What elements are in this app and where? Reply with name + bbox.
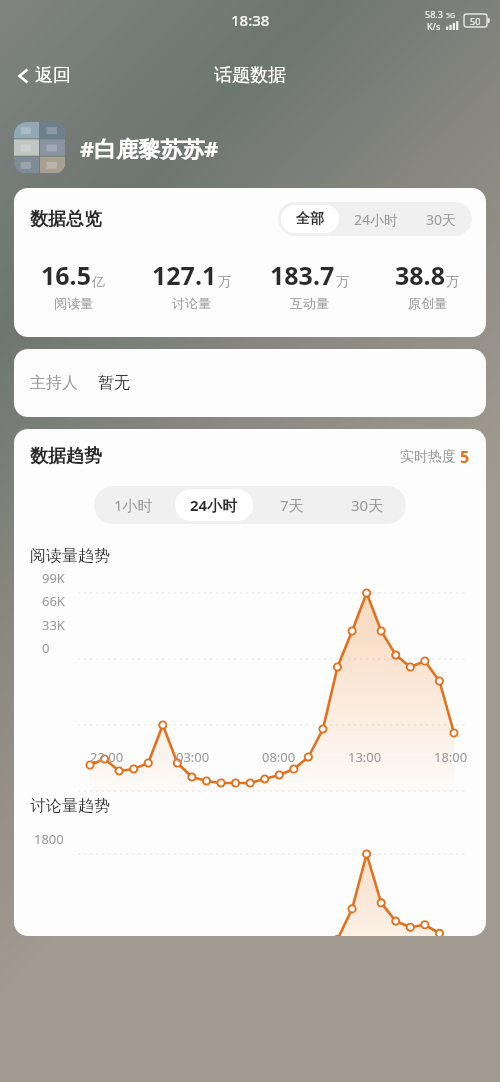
- staticText: 18:38: [231, 10, 270, 30]
- staticText: 返回: [35, 64, 71, 87]
- staticText: 16.5: [41, 258, 91, 292]
- button[interactable]: 16.5: [14, 258, 132, 311]
- button[interactable]: 1小时: [97, 489, 169, 521]
- button[interactable]: 全部: [281, 205, 339, 233]
- button[interactable]: 7天: [259, 489, 325, 521]
- staticText: 7天: [280, 495, 304, 515]
- staticText: 数据趋势: [30, 445, 102, 468]
- staticText: 18:00: [434, 748, 468, 766]
- button[interactable]: #白鹿黎苏苏#: [14, 122, 500, 174]
- staticText: #白鹿黎苏苏#: [80, 133, 219, 163]
- staticText: 50: [470, 15, 481, 27]
- staticText: 万: [336, 273, 349, 289]
- staticText: 22:00: [90, 748, 124, 766]
- staticText: 99K: [42, 569, 65, 587]
- staticText: 万: [218, 273, 231, 289]
- staticText: 阅读量趋势: [30, 546, 110, 566]
- staticText: 实时热度: [400, 448, 456, 466]
- button[interactable]: 30天: [413, 205, 469, 233]
- staticText: 58.3: [425, 8, 443, 20]
- staticText: 讨论量趋势: [30, 796, 110, 816]
- staticText: K/s: [427, 20, 441, 32]
- button[interactable]: 127.1: [132, 258, 250, 311]
- button[interactable]: 38.8: [368, 258, 486, 311]
- button[interactable]: 24小时: [175, 489, 253, 521]
- staticText: 127.1: [152, 258, 217, 292]
- staticText: 1小时: [114, 495, 153, 515]
- button[interactable]: 30天: [331, 489, 403, 521]
- staticText: 万: [446, 273, 459, 289]
- staticText: 讨论量: [172, 295, 211, 311]
- staticText: 08:00: [262, 748, 296, 766]
- staticText: 24小时: [354, 210, 399, 229]
- button[interactable]: 主持人: [14, 349, 486, 417]
- button[interactable]: 183.7: [250, 258, 368, 311]
- staticText: 亿: [92, 273, 105, 289]
- staticText: 66K: [42, 592, 65, 610]
- staticText: 暂无: [98, 373, 130, 393]
- staticText: 13:00: [348, 748, 382, 766]
- staticText: 0: [42, 639, 50, 657]
- staticText: 互动量: [290, 295, 329, 311]
- staticText: 阅读量: [54, 295, 93, 311]
- staticText: 30天: [426, 210, 457, 229]
- staticText: 1800: [34, 830, 64, 848]
- staticText: 主持人: [30, 373, 78, 393]
- staticText: 5G: [446, 11, 456, 21]
- staticText: 话题数据: [214, 64, 286, 87]
- button[interactable]: 24小时: [345, 205, 407, 233]
- staticText: 数据总览: [30, 208, 102, 231]
- staticText: 38.8: [395, 258, 445, 292]
- staticText: 03:00: [176, 748, 210, 766]
- staticText: 24小时: [190, 495, 238, 515]
- staticText: 183.7: [270, 258, 335, 292]
- staticText: 5: [460, 446, 470, 468]
- staticText: 原创量: [408, 295, 447, 311]
- staticText: 30天: [351, 495, 384, 515]
- staticText: 全部: [296, 210, 324, 228]
- button[interactable]: 返回: [10, 60, 77, 91]
- staticText: 33K: [42, 616, 65, 634]
